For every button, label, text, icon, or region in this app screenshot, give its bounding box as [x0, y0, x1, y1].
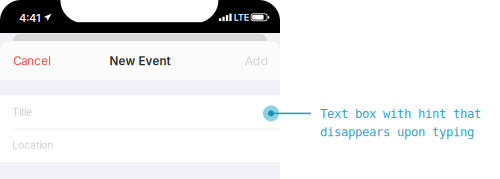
- staticText: New Event: [109, 54, 170, 68]
- staticText: LTE: [234, 12, 250, 23]
- staticText: Location: [12, 139, 53, 151]
- staticText: 4:41: [19, 11, 41, 25]
- staticText: Add: [244, 54, 268, 68]
- staticText: disappears upon typing: [320, 125, 474, 139]
- staticText: Title: [12, 106, 32, 118]
- staticText: Cancel: [13, 54, 51, 68]
- staticText: Text box with hint that: [320, 106, 481, 121]
- button[interactable]: Add: [236, 47, 268, 75]
- button[interactable]: Title: [12, 95, 279, 128]
- button[interactable]: Cancel: [13, 47, 61, 75]
- button[interactable]: Location: [12, 128, 279, 162]
